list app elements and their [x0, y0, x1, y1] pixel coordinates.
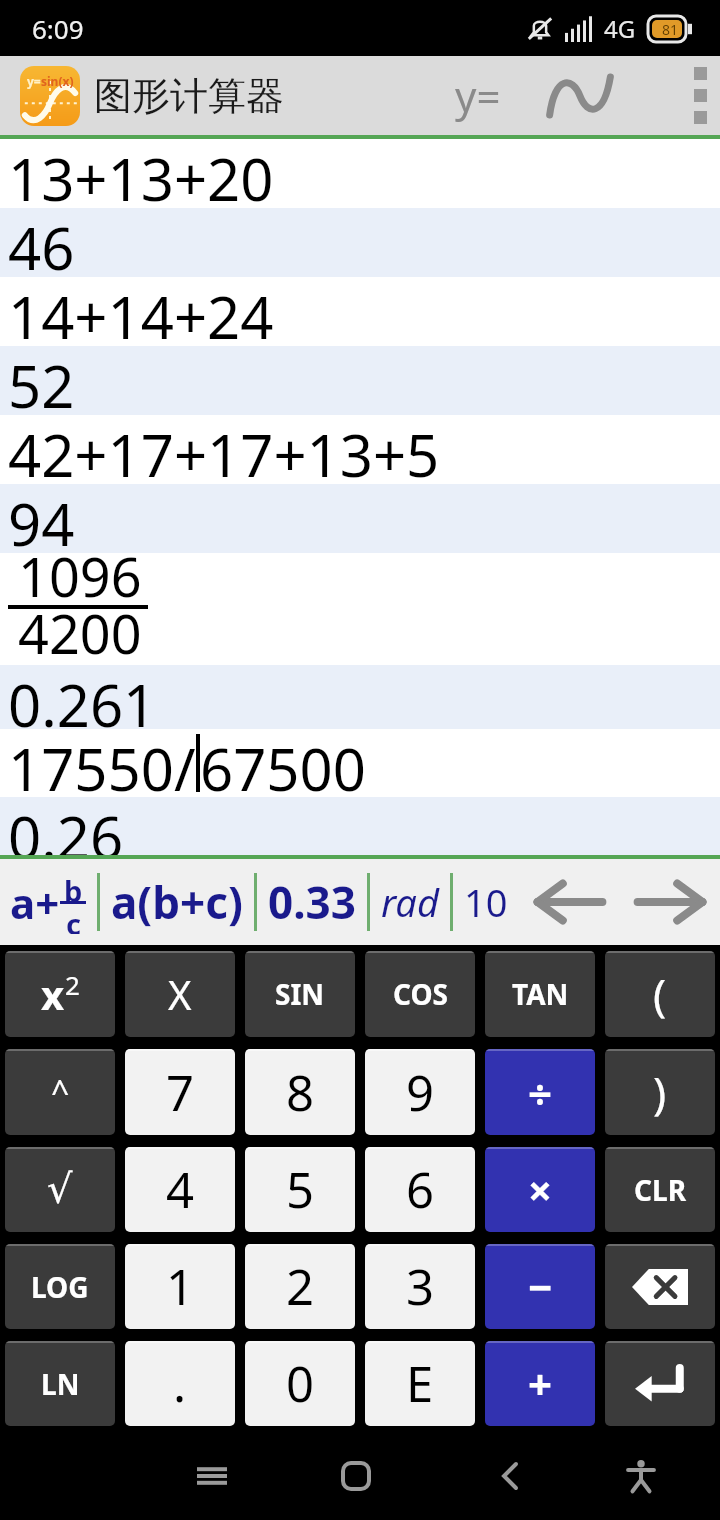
button[interactable]: a+ [10, 871, 86, 934]
staticText: y= [455, 67, 501, 124]
staticText: 5 [286, 1156, 315, 1223]
staticText: SIN [275, 975, 325, 1013]
button[interactable]: 9 [365, 1049, 475, 1135]
button[interactable]: COS [365, 951, 475, 1037]
staticText: TAN [512, 975, 569, 1013]
staticText: 图形计算器 [94, 72, 284, 120]
staticText: LOG [31, 1268, 89, 1306]
staticText: sin(x) [41, 73, 74, 89]
staticText: X [168, 967, 192, 1021]
staticText: 46 [8, 208, 75, 277]
button[interactable] [680, 56, 720, 135]
staticText: CLR [634, 1171, 686, 1209]
button[interactable]: 6 [365, 1147, 475, 1232]
staticText: 1 [166, 1253, 195, 1320]
button[interactable] [634, 880, 706, 924]
button[interactable]: √ [5, 1147, 115, 1232]
staticText: 52 [8, 346, 75, 415]
button[interactable]: CLR [605, 1147, 715, 1232]
button[interactable]: 46 [0, 208, 720, 277]
staticText: 7 [166, 1059, 195, 1126]
staticText: 9 [406, 1059, 435, 1126]
button[interactable] [316, 1436, 396, 1516]
button[interactable]: a(b+c) [111, 872, 243, 932]
staticText: 0.26 [8, 797, 124, 855]
button[interactable]: 0 [245, 1341, 355, 1426]
button[interactable]: 13+13+20 [0, 139, 720, 208]
button[interactable]: 2 [245, 1244, 355, 1329]
staticText: √ [47, 1166, 73, 1213]
staticText: 6:09 [32, 11, 84, 46]
button[interactable]: 3 [365, 1244, 475, 1329]
button[interactable]: 7 [125, 1049, 235, 1135]
button[interactable] [605, 1244, 715, 1329]
staticText: 8 [286, 1059, 315, 1126]
button[interactable]: . [125, 1341, 235, 1426]
staticText: ) [653, 1062, 667, 1122]
button[interactable]: − [485, 1244, 595, 1329]
staticText: a+ [10, 874, 60, 931]
button[interactable]: LN [5, 1341, 115, 1426]
staticText: 6 [406, 1156, 435, 1223]
staticText: + [528, 1355, 553, 1412]
staticText: ÷ [528, 1064, 553, 1121]
staticText: 4200 [18, 596, 142, 670]
button[interactable] [605, 1341, 715, 1426]
button[interactable] [538, 56, 622, 135]
button[interactable] [172, 1436, 252, 1516]
button[interactable]: y= [436, 56, 520, 135]
button[interactable]: SIN [245, 951, 355, 1037]
button[interactable]: 1096 [0, 553, 720, 665]
staticText: 0.261 [8, 665, 157, 729]
button[interactable]: × [485, 1147, 595, 1232]
staticText: 42+17+17+13+5 [8, 415, 440, 484]
button[interactable]: y= [20, 66, 80, 126]
staticText: c [66, 904, 81, 934]
staticText: y= [27, 73, 41, 89]
button[interactable]: rad [381, 876, 439, 928]
button[interactable]: 4 [125, 1147, 235, 1232]
button[interactable]: 42+17+17+13+5 [0, 415, 720, 484]
button[interactable] [470, 1436, 550, 1516]
button[interactable]: ÷ [485, 1049, 595, 1135]
button[interactable]: x [5, 951, 115, 1037]
button[interactable]: 14+14+24 [0, 277, 720, 346]
staticText: E [406, 1350, 434, 1417]
staticText: . [173, 1350, 187, 1417]
button[interactable]: X [125, 951, 235, 1037]
staticText: COS [393, 975, 448, 1013]
button[interactable]: 0.26 [0, 797, 720, 855]
staticText: 67500 [200, 729, 366, 797]
button[interactable]: ) [605, 1049, 715, 1135]
staticText: b [64, 871, 83, 901]
button[interactable]: 17550/ [0, 729, 720, 797]
staticText: 2 [65, 967, 80, 1002]
staticText: 13+13+20 [8, 139, 274, 208]
button[interactable]: ( [605, 951, 715, 1037]
staticText: 4G [604, 12, 636, 45]
staticText: 1096 [18, 539, 142, 613]
button[interactable] [601, 1436, 681, 1516]
staticText: x [41, 967, 65, 1021]
button[interactable]: ^ [5, 1049, 115, 1135]
button[interactable] [534, 880, 606, 924]
button[interactable]: + [485, 1341, 595, 1426]
staticText: ^ [51, 1070, 70, 1114]
staticText: − [528, 1258, 553, 1315]
button[interactable]: 10 [464, 876, 508, 928]
button[interactable]: 8 [245, 1049, 355, 1135]
staticText: 4 [166, 1156, 195, 1223]
button[interactable]: 1 [125, 1244, 235, 1329]
staticText: 0 [286, 1350, 315, 1417]
button[interactable]: 5 [245, 1147, 355, 1232]
button[interactable]: 52 [0, 346, 720, 415]
button[interactable]: LOG [5, 1244, 115, 1329]
staticText: × [528, 1161, 553, 1218]
button[interactable]: 0.33 [268, 872, 356, 932]
button[interactable]: 0.261 [0, 665, 720, 729]
staticText: 14+14+24 [8, 277, 274, 346]
button[interactable]: 94 [0, 484, 720, 553]
button[interactable]: E [365, 1341, 475, 1426]
button[interactable]: TAN [485, 951, 595, 1037]
staticText: 3 [406, 1253, 435, 1320]
